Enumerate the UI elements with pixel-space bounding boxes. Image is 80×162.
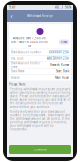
staticText: Withdrawal Receipt bbox=[27, 14, 53, 18]
staticText: ABCD0001234 bbox=[47, 57, 69, 60]
staticText: XXXXXX1234 bbox=[49, 50, 69, 54]
staticText: Ramesh Kumar bbox=[50, 63, 69, 67]
staticText: IFSC code bbox=[11, 57, 24, 60]
staticText: Pending withdrawal requests are processe… bbox=[9, 87, 70, 109]
staticText: 4G ..l 96% bbox=[55, 6, 71, 9]
staticText: Bank Account number bbox=[11, 50, 41, 54]
staticText: State Bank bbox=[56, 70, 69, 73]
staticText: Amount: INR 1,500.00 bbox=[13, 36, 46, 40]
staticText: Bank Account holder name bbox=[11, 61, 40, 68]
button[interactable]: CONFIRM bbox=[9, 145, 71, 154]
staticText: Main Road bbox=[55, 76, 69, 79]
staticText: Please Note bbox=[9, 83, 26, 86]
staticText: Branch bbox=[11, 76, 20, 79]
button[interactable]: View bbox=[59, 39, 69, 44]
staticText: CONFIRM bbox=[34, 148, 46, 151]
button[interactable]: Back bbox=[8, 10, 14, 22]
staticText: IST bbox=[28, 44, 31, 47]
staticText: Bank Name bbox=[11, 70, 25, 73]
staticText: View bbox=[61, 40, 67, 44]
staticText: Kindly verify whether your bank account … bbox=[10, 110, 70, 131]
staticText: ‹ bbox=[10, 12, 12, 20]
staticText: UTR : Nov 18 2024 09:30 bbox=[11, 40, 48, 44]
staticText: 9:41 bbox=[9, 6, 16, 9]
